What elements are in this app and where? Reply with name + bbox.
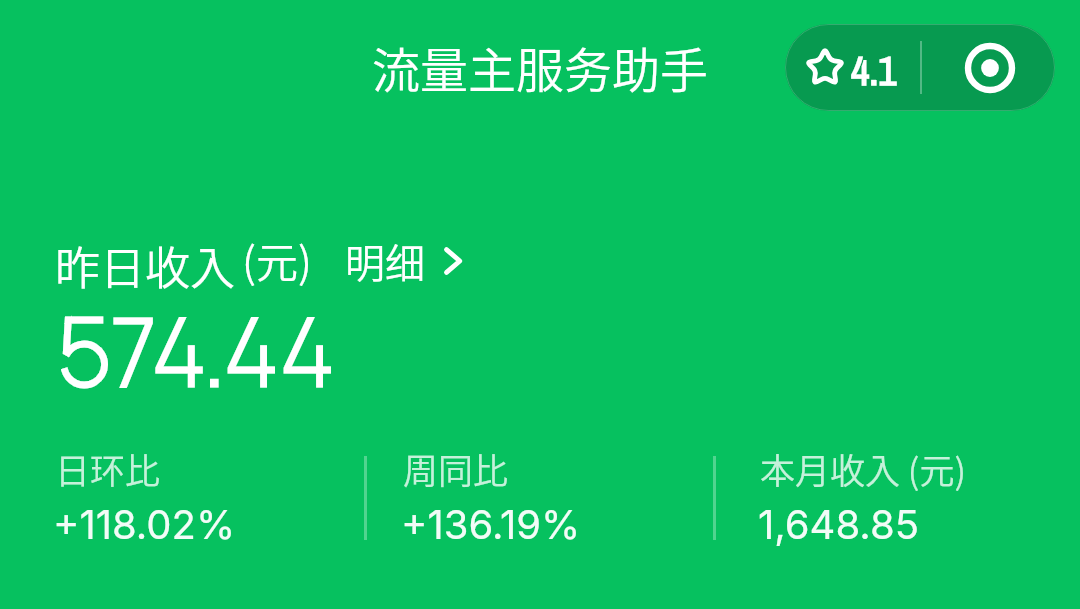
- staticText: 日环比: [55, 443, 161, 494]
- staticText: 本月收入 (元): [760, 443, 966, 494]
- staticText: 1,648.85: [758, 500, 919, 548]
- staticText: 574.44: [58, 287, 335, 414]
- staticText: 明细: [345, 232, 425, 290]
- button[interactable]: 昨日收入: [46, 228, 336, 290]
- staticText: +136.19%: [401, 500, 581, 548]
- button[interactable]: Mini program menu: [922, 24, 1055, 111]
- staticText: 4.1: [851, 44, 897, 98]
- staticText: +118.02%: [53, 500, 236, 548]
- button[interactable]: 明细: [345, 232, 462, 290]
- staticText: 周同比: [403, 443, 509, 494]
- staticText: 流量主服务助手: [372, 32, 709, 102]
- staticText: 昨日收入: [55, 233, 236, 295]
- button[interactable]: Rating 4.1: [785, 24, 920, 111]
- staticText: (元): [242, 229, 312, 290]
